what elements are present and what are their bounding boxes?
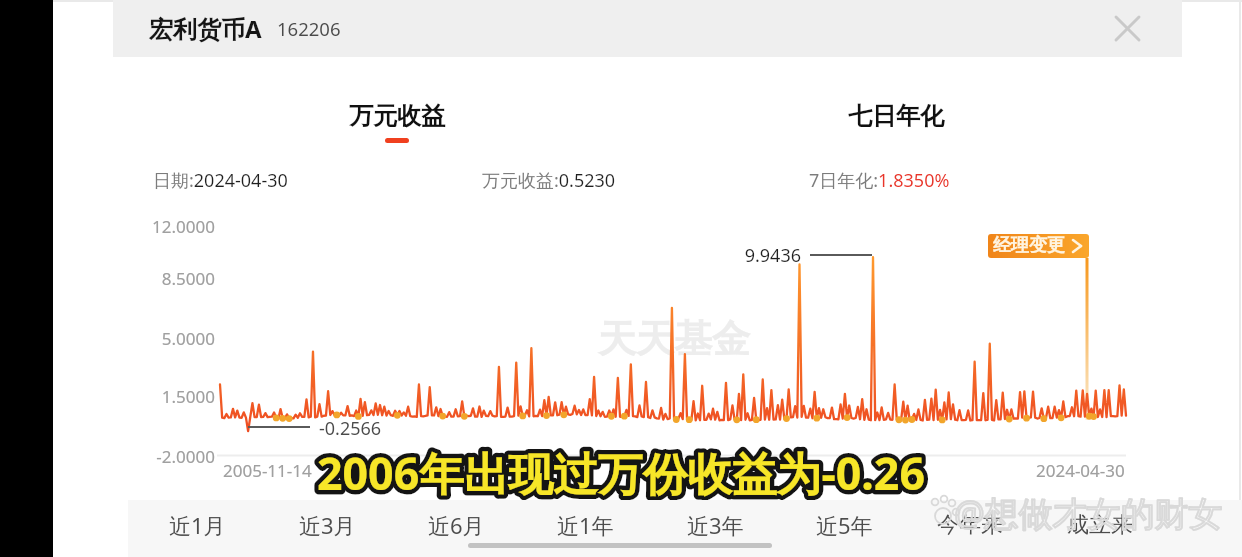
staticText: 8.5000 xyxy=(123,267,215,557)
staticText: 近3年 xyxy=(687,510,744,540)
staticText: 2006年出现过万份收益为-0.26 xyxy=(317,442,925,503)
button[interactable]: 近5年 xyxy=(786,502,902,548)
button[interactable]: 近6月 xyxy=(398,502,514,548)
staticText: 今年来 xyxy=(937,511,1003,539)
staticText: 七日年化 xyxy=(848,101,944,131)
staticText: 近6月 xyxy=(428,510,485,540)
staticText: 2005-11-14 xyxy=(223,459,312,482)
staticText: -0.2566 xyxy=(319,416,382,441)
staticText: 162206 xyxy=(277,16,341,41)
staticText: 7日年化:1.8350% xyxy=(809,168,950,193)
button[interactable]: 经理变更 xyxy=(988,234,1089,258)
staticText: 万元收益 xyxy=(349,101,445,131)
staticText: 日期:2024-04-30 xyxy=(153,168,288,193)
staticText: 近3月 xyxy=(299,510,356,540)
staticText: 5.0000 xyxy=(123,327,215,557)
staticText: 2006年出现过万份收益为-0.26 xyxy=(317,442,925,503)
staticText: 2024-04-30 xyxy=(1036,459,1125,482)
staticText: 成立来 xyxy=(1067,511,1133,539)
button[interactable]: 今年来 xyxy=(912,502,1028,548)
button[interactable]: 近3月 xyxy=(269,502,385,548)
staticText: 近1月 xyxy=(169,510,226,540)
staticText: 1.5000 xyxy=(123,385,215,557)
staticText: 近5年 xyxy=(816,510,873,540)
staticText: -2.0000 xyxy=(123,445,215,557)
staticText: 天天基金 xyxy=(598,315,750,363)
staticText: 12.0000 xyxy=(123,215,215,557)
staticText: 9.9436 xyxy=(700,243,801,557)
staticText: 经理变更 xyxy=(993,234,1065,257)
button[interactable]: 近1月 xyxy=(139,502,255,548)
button[interactable]: 近3年 xyxy=(657,502,773,548)
button[interactable]: 近1年 xyxy=(527,502,643,548)
staticText: 万元收益:0.5230 xyxy=(482,168,616,193)
staticText: @想做才女的财女 xyxy=(954,490,1223,536)
button[interactable]: 万元收益 xyxy=(330,101,464,149)
staticText: 宏利货币A xyxy=(149,12,262,45)
button[interactable]: Close xyxy=(1105,6,1150,51)
button[interactable]: 成立来 xyxy=(1042,502,1158,548)
staticText: 近1年 xyxy=(557,510,614,540)
button[interactable]: 七日年化 xyxy=(829,101,963,149)
